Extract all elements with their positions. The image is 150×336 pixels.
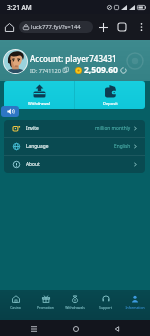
staticText: Support <box>99 305 112 310</box>
button[interactable]: Information <box>120 290 150 320</box>
button[interactable]: More options <box>133 19 149 35</box>
button[interactable]: Copy ID <box>63 67 69 73</box>
button[interactable]: Support <box>90 290 120 320</box>
button[interactable]: Casino <box>0 290 30 320</box>
button[interactable]: Avatar <box>4 50 27 73</box>
button[interactable]: Sound <box>1 106 19 117</box>
button[interactable]: Withdrawal <box>4 81 74 109</box>
button[interactable]: Refresh balance <box>120 67 127 74</box>
staticText: Information <box>125 305 145 310</box>
button[interactable]: Withdrawals <box>60 290 90 320</box>
staticText: Promotion <box>37 305 54 310</box>
staticText: Casino <box>10 305 21 310</box>
staticText: English <box>114 143 131 150</box>
staticText: Invite <box>26 125 39 132</box>
staticText: million monthly <box>95 125 131 132</box>
button[interactable]: Deposit <box>75 81 145 109</box>
button[interactable]: Home <box>68 321 83 336</box>
staticText: About <box>26 161 40 168</box>
staticText: 3:21 AM <box>7 3 32 12</box>
staticText: Language <box>26 143 49 150</box>
button[interactable]: Tabs <box>114 19 130 35</box>
staticText: ID: 7741120 <box>30 67 61 74</box>
button[interactable]: luck777.fyi/?s=144 <box>19 21 93 33</box>
staticText: Account: player743431 <box>30 53 117 64</box>
button[interactable]: Invite <box>4 120 145 137</box>
button[interactable]: Back <box>109 321 124 336</box>
button[interactable]: About <box>4 156 145 173</box>
staticText: Withdrawals <box>65 305 85 310</box>
button[interactable]: Promotion <box>30 290 60 320</box>
staticText: Deposit <box>103 101 118 106</box>
staticText: Withdrawal <box>28 101 50 106</box>
button[interactable]: Home <box>0 14 19 40</box>
staticText: 2,509.60 <box>84 64 118 76</box>
button[interactable]: New tab <box>95 19 111 35</box>
button[interactable]: Language <box>4 138 145 155</box>
button[interactable]: Recents <box>26 321 41 336</box>
staticText: luck777.fyi/?s=144 <box>31 23 81 31</box>
